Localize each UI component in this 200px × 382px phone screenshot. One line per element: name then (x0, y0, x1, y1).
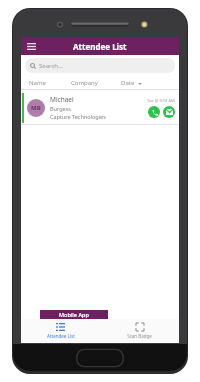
button[interactable]: Attendee List (21, 319, 100, 343)
button[interactable]: Call attendee (148, 106, 160, 118)
button[interactable]: Company (71, 79, 121, 87)
button[interactable]: Open navigation menu (25, 40, 38, 53)
button[interactable]: MB (21, 90, 179, 125)
staticText: Search... (39, 62, 63, 70)
staticText: Attendee List (47, 333, 75, 339)
staticText: Michael (50, 95, 74, 104)
button[interactable]: Date (121, 79, 142, 87)
staticText: Mobile App (59, 311, 89, 318)
button[interactable]: Mobile App (40, 310, 108, 319)
button[interactable]: Email attendee (163, 106, 175, 118)
staticText: Attendee List (73, 41, 127, 52)
staticText: Tue @ 9:10 AM (147, 98, 175, 103)
button[interactable]: Scan Badge (100, 319, 179, 343)
staticText: Burgess (50, 105, 71, 112)
button[interactable]: Search... (25, 58, 175, 73)
staticText: Capture Technologies (50, 113, 106, 120)
staticText: Date (121, 79, 135, 87)
staticText: MB (31, 104, 41, 112)
staticText: Scan Badge (127, 333, 152, 339)
button[interactable]: Name (29, 79, 71, 87)
